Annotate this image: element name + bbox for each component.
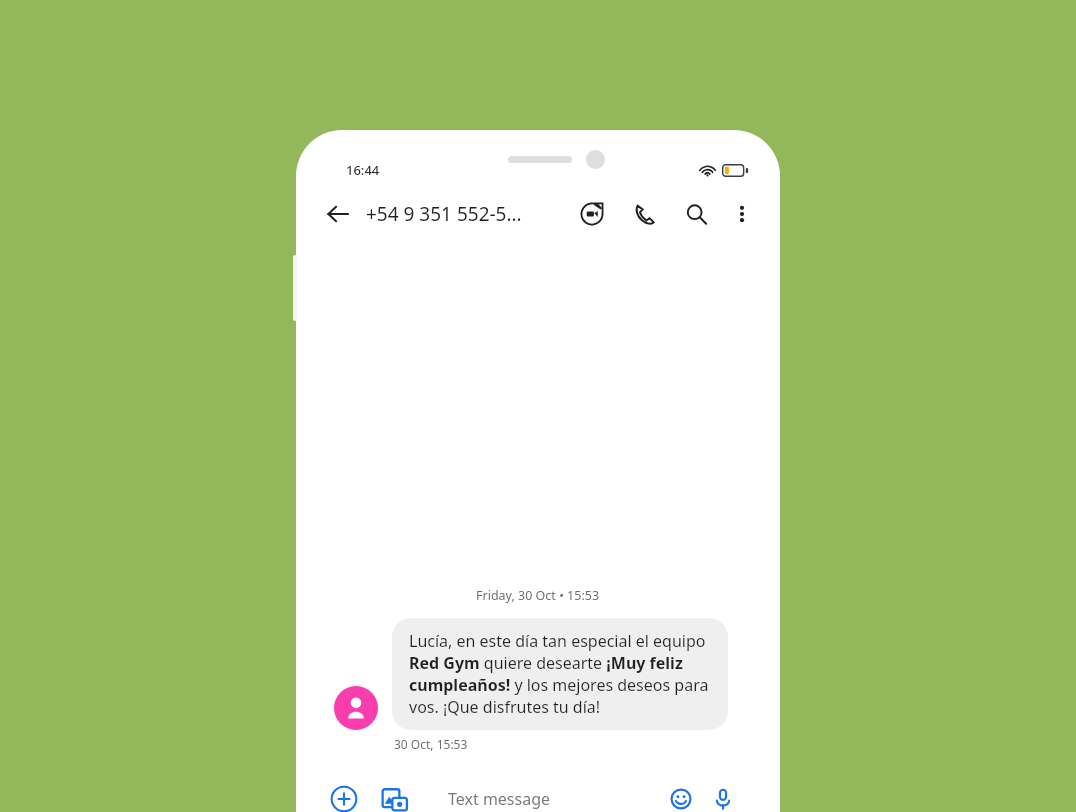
staticText: 30 Oct, 15:53 — [394, 736, 468, 752]
button[interactable]: Lucía, en este día tan especial el equip… — [392, 618, 728, 730]
button[interactable]: More options — [722, 194, 762, 234]
button[interactable]: Add attachment — [324, 779, 364, 812]
staticText: Friday, 30 Oct • 15:53 — [476, 587, 600, 604]
button[interactable]: Contact avatar — [334, 686, 378, 730]
button[interactable]: Call — [624, 194, 664, 234]
staticText: Text message — [448, 788, 666, 810]
staticText: 16:44 — [346, 161, 380, 179]
staticText: Lucía, en este día tan especial el equip… — [409, 630, 711, 718]
button[interactable]: Send image — [374, 779, 414, 812]
button[interactable]: Search — [676, 194, 716, 234]
button[interactable]: Text message — [428, 776, 752, 812]
button[interactable]: Back — [318, 194, 358, 234]
button[interactable]: Voice input — [708, 784, 738, 812]
button[interactable]: Emoji — [666, 784, 696, 812]
button[interactable]: +54 9 351 552-5… — [366, 201, 572, 227]
button[interactable]: Video call — [572, 194, 612, 234]
